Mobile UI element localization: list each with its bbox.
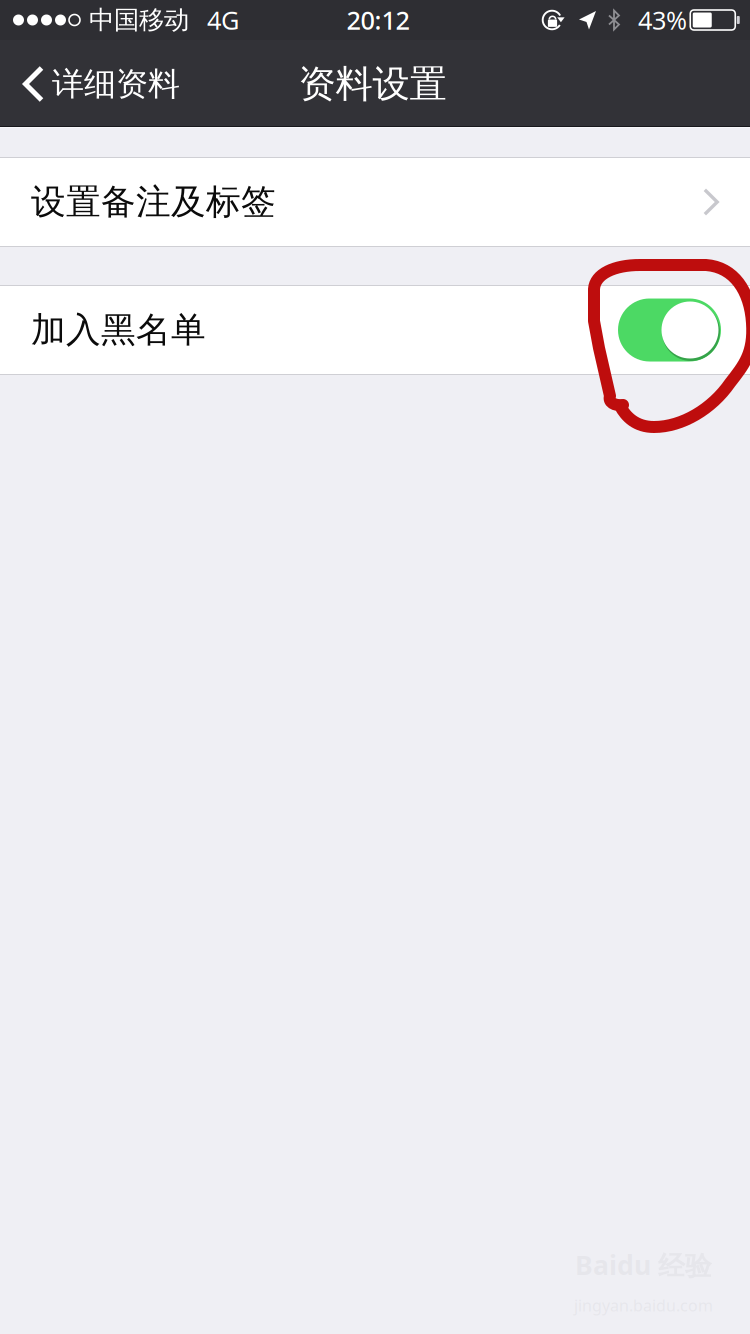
button[interactable]: 详细资料 — [0, 40, 194, 126]
staticText: 43% — [638, 3, 687, 37]
staticText: 4G — [207, 3, 239, 37]
button[interactable]: 设置备注及标签 — [0, 158, 750, 246]
staticText: 加入黑名单 — [31, 309, 206, 351]
staticText: 中国移动 — [89, 4, 189, 35]
staticText: 设置备注及标签 — [31, 181, 276, 223]
staticText: 详细资料 — [52, 64, 180, 104]
staticText: 资料设置 — [298, 61, 446, 107]
staticText: 20:12 — [346, 3, 409, 37]
staticText: Baidu 经验 — [575, 1247, 712, 1283]
button[interactable]: 加入黑名单 — [618, 298, 721, 361]
